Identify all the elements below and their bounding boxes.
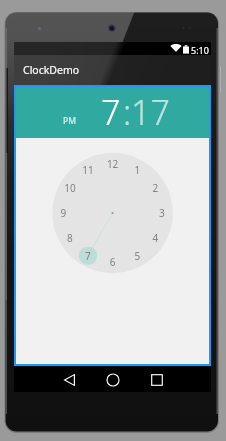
button[interactable]: 7 [101,89,121,135]
button[interactable]: Home [100,367,126,392]
staticText: 5:10 [191,44,209,56]
button[interactable]: Recent apps [144,367,170,392]
button[interactable]: 17 [131,89,170,135]
staticText: : [123,89,132,135]
button[interactable]: PM [63,115,76,127]
button[interactable]: Back [56,367,82,392]
staticText: ClockDemo [23,63,80,77]
button[interactable] [16,138,209,364]
